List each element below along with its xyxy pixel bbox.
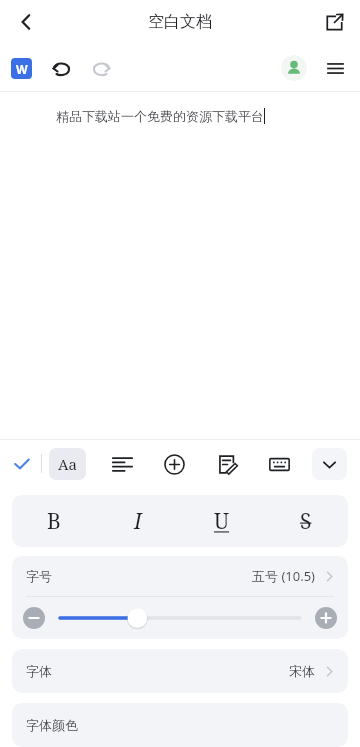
button[interactable]: Collapse panel — [312, 448, 347, 480]
button[interactable]: Word document — [5, 52, 37, 84]
button[interactable]: Back — [4, 0, 48, 44]
staticText: 字体颜色 — [26, 717, 78, 733]
staticText: 字号 — [26, 568, 52, 584]
staticText: Aa — [58, 454, 78, 474]
button[interactable]: Increase font size — [315, 607, 337, 629]
button[interactable]: Undo — [42, 49, 80, 87]
staticText: 精品下载站一个免费的资源下载平台 — [56, 108, 264, 124]
button[interactable]: Keyboard — [261, 446, 297, 482]
button[interactable]: Text format — [49, 448, 86, 480]
button[interactable]: Menu — [316, 49, 354, 87]
button[interactable]: Account — [276, 50, 312, 86]
staticText: 宋体 — [289, 663, 315, 679]
button[interactable]: 字体 — [12, 649, 348, 693]
button[interactable]: Strikethrough — [264, 495, 348, 547]
button[interactable]: Font size slider — [58, 606, 302, 630]
button[interactable]: Bold — [12, 495, 96, 547]
button[interactable]: Share — [314, 2, 354, 42]
button[interactable]: 字体颜色 — [12, 703, 348, 747]
button[interactable]: Italic — [96, 495, 180, 547]
staticText: W — [16, 61, 28, 77]
button[interactable]: Done — [3, 445, 41, 483]
button[interactable]: Redo — [82, 49, 120, 87]
button[interactable]: Align left — [104, 446, 140, 482]
button[interactable]: 字号 — [12, 556, 348, 596]
button[interactable]: Decrease font size — [23, 607, 45, 629]
button[interactable]: Underline — [180, 495, 264, 547]
button[interactable]: Insert — [156, 446, 192, 482]
staticText: 五号 (10.5) — [252, 567, 315, 585]
staticText: U — [214, 507, 230, 536]
staticText: S — [300, 507, 312, 536]
staticText: I — [134, 507, 142, 536]
staticText: 字体 — [26, 663, 52, 679]
staticText: B — [47, 507, 61, 536]
button[interactable]: Review — [209, 446, 245, 482]
staticText: 空白文档 — [148, 12, 212, 32]
